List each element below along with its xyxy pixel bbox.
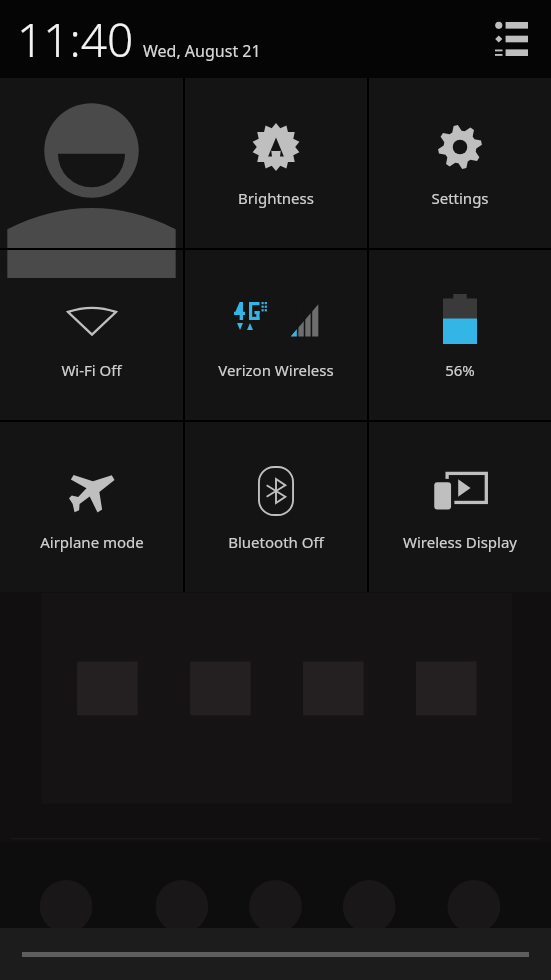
- staticText: Brightness: [238, 188, 314, 208]
- staticText: Wireless Display: [403, 532, 517, 552]
- button[interactable]: Wi-Fi: [0, 250, 183, 420]
- staticText: 11:40: [17, 8, 134, 71]
- button[interactable]: Mobile data: [185, 250, 367, 420]
- button[interactable]: Quick settings: [483, 11, 539, 67]
- staticText: Wi-Fi Off: [61, 360, 122, 380]
- button[interactable]: Wireless display: [369, 422, 551, 592]
- button[interactable]: Bluetooth: [185, 422, 367, 592]
- button[interactable]: Brightness: [185, 78, 367, 248]
- button[interactable]: Settings: [369, 78, 551, 248]
- staticText: Bluetooth Off: [228, 532, 324, 552]
- button[interactable]: User profile: [0, 78, 183, 248]
- staticText: Verizon Wireless: [218, 360, 334, 380]
- staticText: 56%: [445, 360, 475, 380]
- button[interactable]: Airplane mode: [0, 422, 183, 592]
- staticText: Airplane mode: [40, 532, 144, 552]
- staticText: Wed, August 21: [143, 40, 261, 62]
- button[interactable]: Close quick settings: [0, 928, 551, 980]
- staticText: Settings: [431, 188, 489, 208]
- button[interactable]: Battery: [369, 250, 551, 420]
